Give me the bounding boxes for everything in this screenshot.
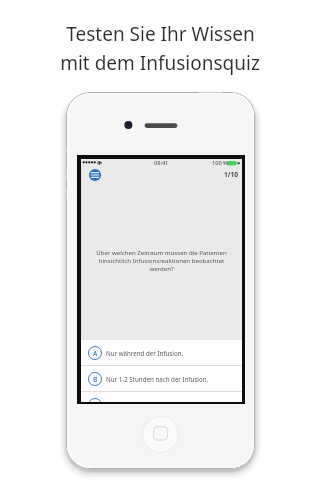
button[interactable]: Home xyxy=(141,415,180,454)
staticText: Testen Sie Ihr Wissen xyxy=(66,21,255,47)
staticText: 09:41 xyxy=(154,159,169,167)
button[interactable]: C xyxy=(81,392,242,402)
staticText: mit dem Infusionsquiz xyxy=(60,50,260,76)
staticText: 1/10 xyxy=(224,170,239,179)
staticText: Über welchen Zeitraum müssen die Patient… xyxy=(93,248,230,272)
staticText: 100 % xyxy=(212,159,228,167)
staticText: Nur 1-2 Stunden nach der Infusion. xyxy=(106,375,209,383)
button[interactable]: Menu xyxy=(89,169,101,181)
staticText: B xyxy=(93,375,98,384)
staticText: A xyxy=(93,349,98,358)
button[interactable]: A xyxy=(81,340,242,366)
button[interactable]: B xyxy=(81,366,242,392)
staticText: Nur während der Infusion. xyxy=(106,349,184,357)
